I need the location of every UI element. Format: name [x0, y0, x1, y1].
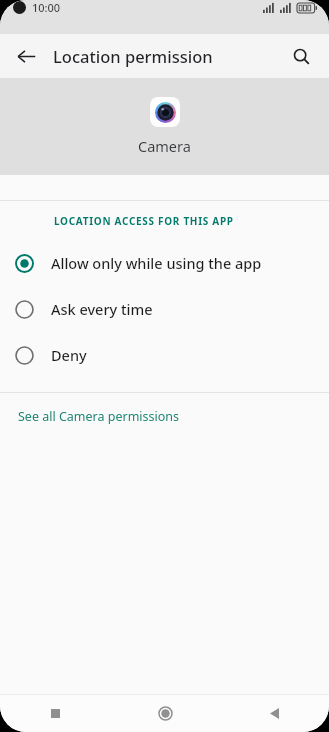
- staticText: Allow only while using the app: [51, 253, 262, 273]
- button[interactable]: Allow only while using the app: [0, 240, 329, 286]
- staticText: See all Camera permissions: [18, 408, 180, 425]
- staticText: 10:00: [32, 0, 61, 15]
- button[interactable]: Back: [252, 695, 296, 732]
- button[interactable]: Search: [281, 36, 321, 76]
- button[interactable]: Deny: [0, 332, 329, 378]
- staticText: LOCATION ACCESS FOR THIS APP: [54, 214, 234, 228]
- staticText: Ask every time: [51, 299, 153, 319]
- button[interactable]: See all Camera permissions: [0, 393, 329, 439]
- staticText: Deny: [51, 345, 87, 365]
- button[interactable]: Home: [143, 695, 187, 732]
- staticText: Location permission: [53, 45, 213, 67]
- button[interactable]: Back: [6, 36, 46, 76]
- staticText: Camera: [138, 136, 191, 156]
- button[interactable]: Recent apps: [33, 695, 77, 732]
- button[interactable]: Ask every time: [0, 286, 329, 332]
